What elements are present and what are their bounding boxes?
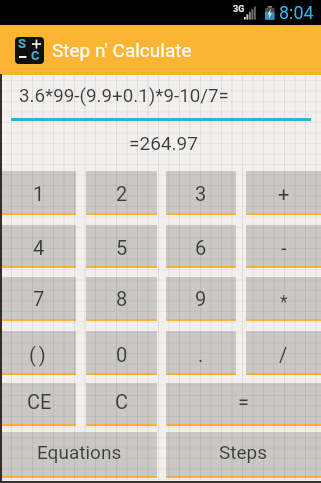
staticText: 3G bbox=[233, 4, 245, 15]
button[interactable]: . bbox=[166, 331, 236, 375]
staticText: 9 bbox=[195, 287, 207, 310]
staticText: - bbox=[281, 236, 287, 259]
button[interactable]: 3 bbox=[166, 171, 236, 215]
button[interactable]: 0 bbox=[86, 331, 157, 375]
button[interactable]: * bbox=[246, 277, 321, 321]
button[interactable]: 9 bbox=[166, 277, 236, 321]
button[interactable]: 7 bbox=[2, 277, 76, 321]
button[interactable]: 5 bbox=[86, 225, 157, 268]
staticText: 8:04 bbox=[279, 2, 314, 23]
button[interactable]: C bbox=[86, 383, 157, 426]
staticText: 0 bbox=[116, 343, 128, 366]
staticText: 6 bbox=[195, 236, 207, 259]
staticText: 8 bbox=[116, 287, 128, 310]
staticText: Steps bbox=[219, 441, 268, 463]
button[interactable]: = bbox=[166, 383, 321, 426]
staticText: 1 bbox=[33, 182, 45, 205]
button[interactable]: Steps bbox=[166, 432, 321, 478]
staticText: CE bbox=[27, 390, 52, 413]
button[interactable]: 4 bbox=[2, 225, 76, 268]
staticText: = bbox=[238, 390, 249, 413]
button[interactable]: 2 bbox=[86, 171, 157, 215]
button[interactable]: / bbox=[246, 331, 321, 375]
staticText: C bbox=[31, 48, 40, 63]
button[interactable]: 6 bbox=[166, 225, 236, 268]
staticText: C bbox=[115, 390, 129, 413]
button[interactable]: 1 bbox=[2, 171, 76, 215]
button[interactable]: CE bbox=[2, 383, 76, 426]
button[interactable]: 8 bbox=[86, 277, 157, 321]
staticText: Equations bbox=[37, 441, 122, 463]
staticText: . bbox=[198, 343, 204, 366]
staticText: * bbox=[280, 292, 288, 313]
button[interactable]: + bbox=[246, 171, 321, 215]
staticText: () bbox=[29, 343, 49, 366]
staticText: + bbox=[278, 182, 290, 205]
staticText: 3 bbox=[195, 182, 207, 205]
button[interactable]: () bbox=[2, 331, 76, 375]
staticText: 7 bbox=[33, 287, 45, 310]
staticText: / bbox=[279, 343, 288, 366]
staticText: 3.6*99-(9.9+0.1)*9-10/7= bbox=[19, 85, 229, 107]
staticText: 2 bbox=[116, 182, 128, 205]
button[interactable]: Equations bbox=[2, 432, 157, 478]
staticText: Step n' Calculate bbox=[52, 39, 192, 61]
staticText: =264.97 bbox=[3, 132, 321, 154]
staticText: 4 bbox=[33, 236, 45, 259]
staticText: 5 bbox=[116, 236, 128, 259]
button[interactable]: - bbox=[246, 225, 321, 268]
staticText: S bbox=[18, 37, 26, 51]
